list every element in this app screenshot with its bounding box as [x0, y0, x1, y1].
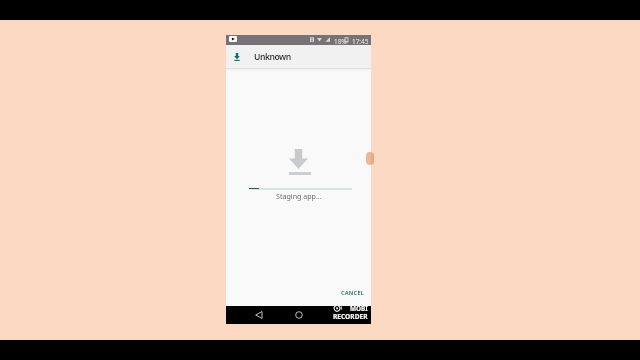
button[interactable]: Back	[252, 308, 266, 322]
staticText: RECORDER	[333, 312, 368, 321]
staticText: Unknown	[254, 51, 291, 63]
button[interactable]: Home	[292, 308, 306, 322]
staticText: 18%	[334, 37, 347, 46]
button[interactable]: App icon	[230, 50, 244, 64]
button[interactable]: CANCEL	[337, 285, 369, 301]
staticText: 17:45	[352, 37, 369, 46]
button[interactable]: Recorder	[366, 152, 374, 165]
staticText: CANCEL	[341, 289, 365, 297]
staticText: MOBI	[350, 304, 368, 313]
staticText: Staging app...	[276, 191, 322, 201]
